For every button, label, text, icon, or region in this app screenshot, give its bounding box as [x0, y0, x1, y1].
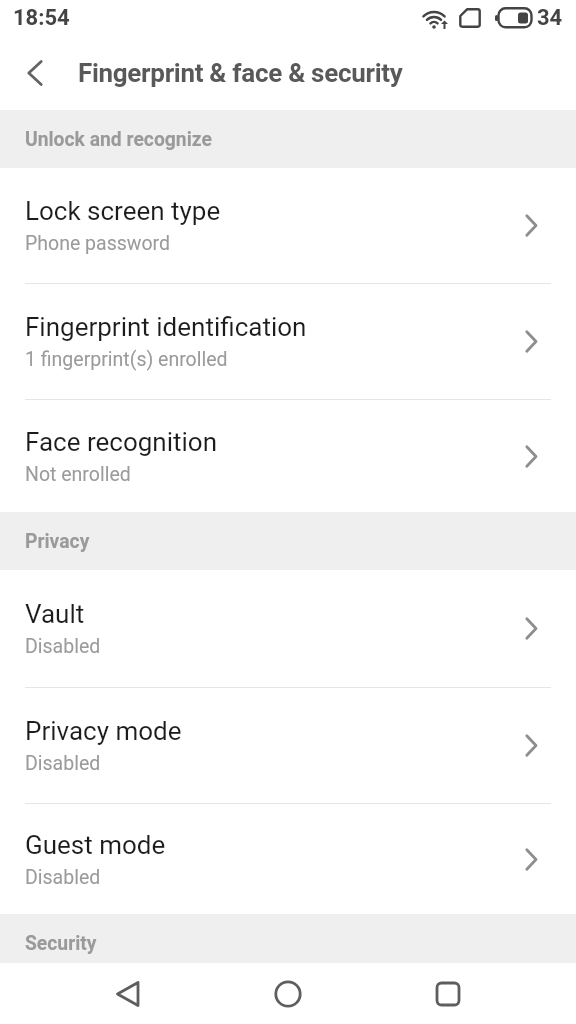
button[interactable]: Guest mode — [0, 804, 576, 914]
staticText: Vault — [25, 599, 85, 629]
button[interactable] — [0, 36, 70, 110]
staticText: Guest mode — [25, 830, 166, 860]
staticText: Phone password — [25, 232, 170, 255]
staticText: Privacy mode — [25, 716, 182, 746]
button[interactable] — [48, 963, 208, 1024]
staticText: 1 fingerprint(s) enrolled — [25, 348, 228, 371]
staticText: Unlock and recognize — [25, 128, 212, 151]
staticText: Disabled — [25, 752, 101, 775]
staticText: Lock screen type — [25, 196, 221, 226]
staticText: Face recognition — [25, 427, 218, 457]
staticText: Disabled — [25, 635, 101, 658]
button[interactable]: Vault — [0, 570, 576, 687]
button[interactable] — [368, 963, 528, 1024]
button[interactable]: Privacy mode — [0, 688, 576, 803]
staticText: 18:54 — [13, 5, 70, 31]
button[interactable]: Lock screen type — [0, 168, 576, 283]
staticText: Disabled — [25, 866, 101, 889]
button[interactable]: Fingerprint identification — [0, 284, 576, 399]
staticText: Security — [25, 932, 97, 955]
staticText: Fingerprint & face & security — [78, 58, 403, 88]
staticText: 34 — [537, 5, 563, 31]
button[interactable]: Face recognition — [0, 400, 576, 512]
staticText: Fingerprint identification — [25, 312, 307, 342]
staticText: Not enrolled — [25, 463, 131, 486]
staticText: Privacy — [25, 530, 90, 553]
button[interactable] — [208, 963, 368, 1024]
